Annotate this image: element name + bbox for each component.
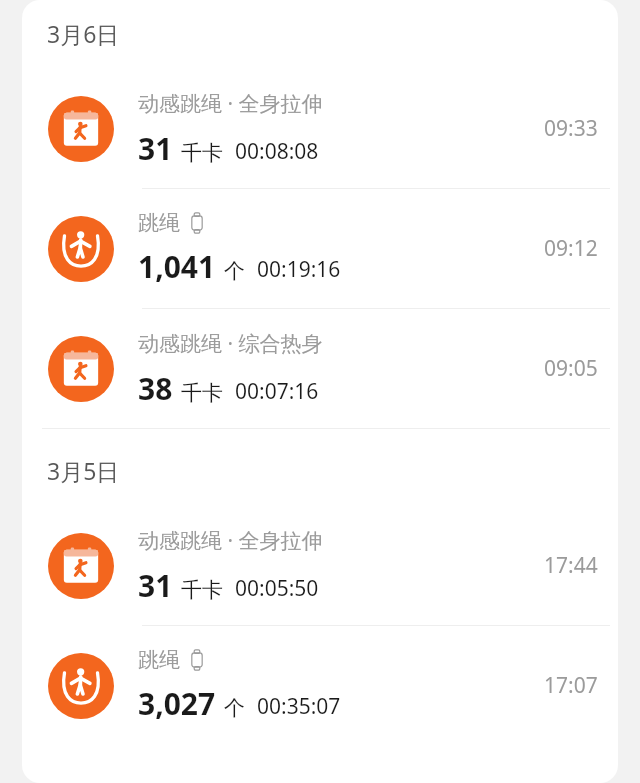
staticText: 09:33	[544, 114, 598, 143]
staticText: 17:44	[544, 551, 598, 580]
staticText: 09:12	[544, 234, 598, 263]
staticText: 1,041	[138, 246, 216, 287]
staticText: 千卡	[181, 577, 223, 603]
staticText: 个	[224, 695, 245, 721]
staticText: 3,027	[138, 683, 216, 724]
staticText: 3月6日	[47, 18, 120, 49]
other: Jump rope workout	[48, 216, 114, 282]
staticText: 09:05	[544, 354, 598, 383]
staticText: 17:07	[544, 671, 598, 700]
staticText: 31	[138, 565, 173, 606]
staticText: 千卡	[181, 380, 223, 406]
other: Stretch workout	[48, 533, 114, 599]
other: Stretch workout	[48, 336, 114, 402]
staticText: 00:19:16	[257, 255, 341, 284]
staticText: 00:07:16	[235, 377, 319, 406]
other: Jump rope workout	[48, 653, 114, 719]
staticText: 个	[224, 258, 245, 284]
button[interactable]: Jump rope workout	[22, 189, 618, 308]
staticText: 38	[138, 368, 173, 409]
staticText: 千卡	[181, 140, 223, 166]
staticText: 00:05:50	[235, 574, 319, 603]
staticText: 动感跳绳 · 全身拉伸	[138, 526, 323, 555]
staticText: 31	[138, 128, 173, 169]
button[interactable]: Jump rope workout	[22, 626, 618, 745]
staticText: 3月5日	[47, 455, 120, 486]
button[interactable]: Stretch workout	[22, 69, 618, 188]
button[interactable]: Stretch workout	[22, 309, 618, 428]
staticText: 跳绳	[138, 647, 180, 673]
button[interactable]: Stretch workout	[22, 506, 618, 625]
staticText: 00:08:08	[235, 137, 319, 166]
staticText: 00:35:07	[257, 692, 341, 721]
staticText: 跳绳	[138, 210, 180, 236]
other: Stretch workout	[48, 96, 114, 162]
staticText: 动感跳绳 · 综合热身	[138, 329, 323, 358]
staticText: 动感跳绳 · 全身拉伸	[138, 89, 323, 118]
